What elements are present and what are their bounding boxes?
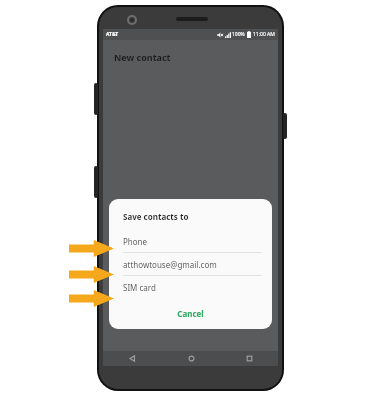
button[interactable]: Home: [162, 351, 220, 366]
staticText: Phone: [123, 236, 148, 247]
staticText: New contact: [114, 51, 171, 63]
staticText: Save contacts to: [123, 211, 189, 222]
staticText: AT&T: [106, 31, 119, 38]
staticText: 100%: [232, 31, 245, 38]
button[interactable]: atthowtouse@gmail.com: [109, 253, 272, 275]
button[interactable]: Phone: [109, 230, 272, 252]
staticText: Cancel: [177, 308, 204, 319]
button[interactable]: Cancel: [109, 302, 272, 324]
staticText: SIM card: [123, 282, 156, 293]
button[interactable]: SIM card: [109, 276, 272, 298]
button[interactable]: Recents: [220, 351, 278, 366]
staticText: 11:00 AM: [253, 31, 275, 38]
button[interactable]: Back: [103, 351, 162, 366]
staticText: atthowtouse@gmail.com: [123, 259, 217, 270]
